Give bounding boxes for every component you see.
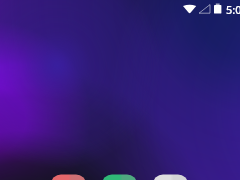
button[interactable]: Messages <box>102 174 137 180</box>
staticText: 5:00 <box>226 2 240 17</box>
button[interactable]: Phone <box>51 174 86 180</box>
button[interactable]: Browser <box>153 174 188 180</box>
